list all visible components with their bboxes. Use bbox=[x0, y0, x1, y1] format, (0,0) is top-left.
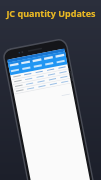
staticText: JC quantity Updates bbox=[6, 7, 96, 19]
button[interactable]: App preview phone bbox=[0, 0, 101, 180]
